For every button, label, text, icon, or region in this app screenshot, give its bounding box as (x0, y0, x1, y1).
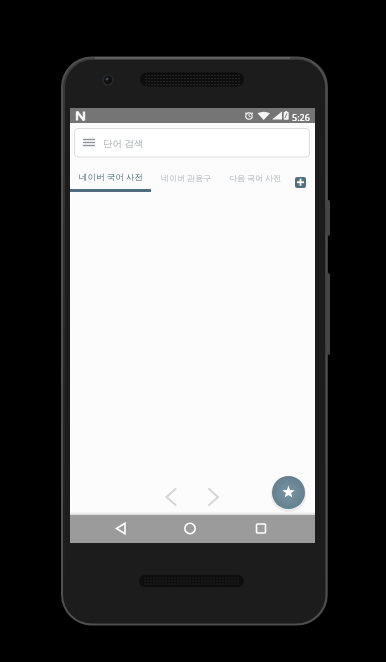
button[interactable] (272, 476, 305, 509)
button[interactable] (205, 488, 221, 506)
button[interactable]: 네이버 국어 사전 (70, 163, 151, 191)
button[interactable] (177, 518, 203, 540)
button[interactable] (295, 177, 306, 188)
button[interactable]: 네이버 관용구 (151, 163, 221, 191)
button[interactable] (163, 488, 179, 506)
staticText: 단어 검색 (103, 137, 144, 150)
staticText: 5:26 (292, 111, 310, 123)
staticText: 네이버 국어 사전 (79, 171, 143, 183)
staticText: 다음 국어 사전 (229, 172, 282, 183)
staticText: 네이버 관용구 (161, 172, 212, 183)
button[interactable] (248, 518, 274, 540)
button[interactable]: 다음 국어 사전 (224, 163, 286, 191)
button[interactable] (74, 128, 310, 158)
button[interactable] (108, 518, 134, 540)
